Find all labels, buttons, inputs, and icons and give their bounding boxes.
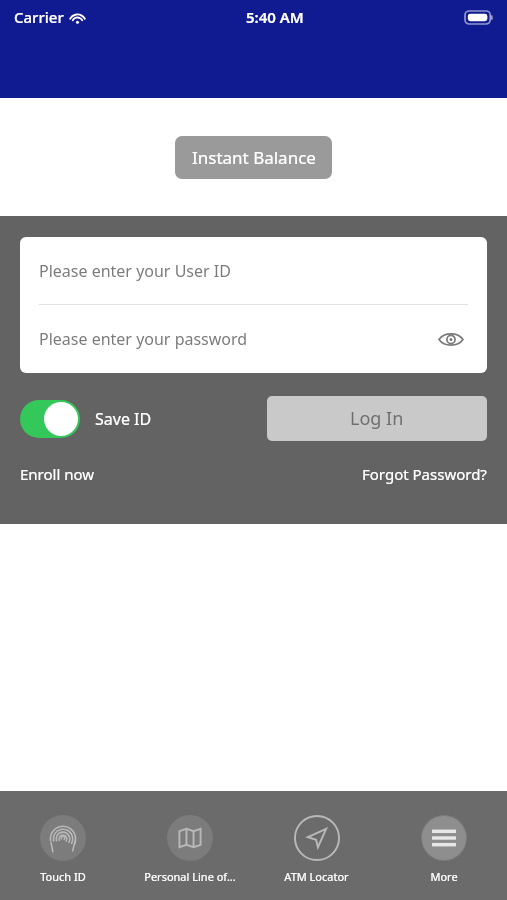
staticText: Forgot Password? [362,464,487,484]
button[interactable]: Enroll now [20,464,95,484]
staticText: Log In [350,406,404,431]
button[interactable]: Save ID toggle [20,400,80,438]
staticText: Touch ID [40,869,86,884]
staticText: Carrier [14,7,64,27]
button[interactable]: Forgot Password? [362,464,487,484]
staticText: Please enter your User ID [39,260,231,282]
staticText: Save ID [95,408,152,430]
button[interactable]: More [380,791,507,900]
button[interactable]: Please enter your password [20,305,487,373]
button[interactable]: Log In [267,396,487,441]
staticText: Enroll now [20,464,95,484]
staticText: Instant Balance [192,146,316,169]
button[interactable]: Instant Balance [175,136,332,179]
button[interactable]: Touch ID [0,791,126,900]
staticText: Personal Line of... [144,869,236,884]
button[interactable]: Please enter your User ID [20,237,487,304]
staticText: 5:40 AM [246,7,304,27]
button[interactable]: Personal Line of... [126,791,253,900]
button[interactable]: Show password [434,322,468,356]
button[interactable]: ATM Locator [253,791,380,900]
staticText: More [430,869,458,884]
staticText: Please enter your password [39,328,248,350]
staticText: ATM Locator [284,869,349,884]
